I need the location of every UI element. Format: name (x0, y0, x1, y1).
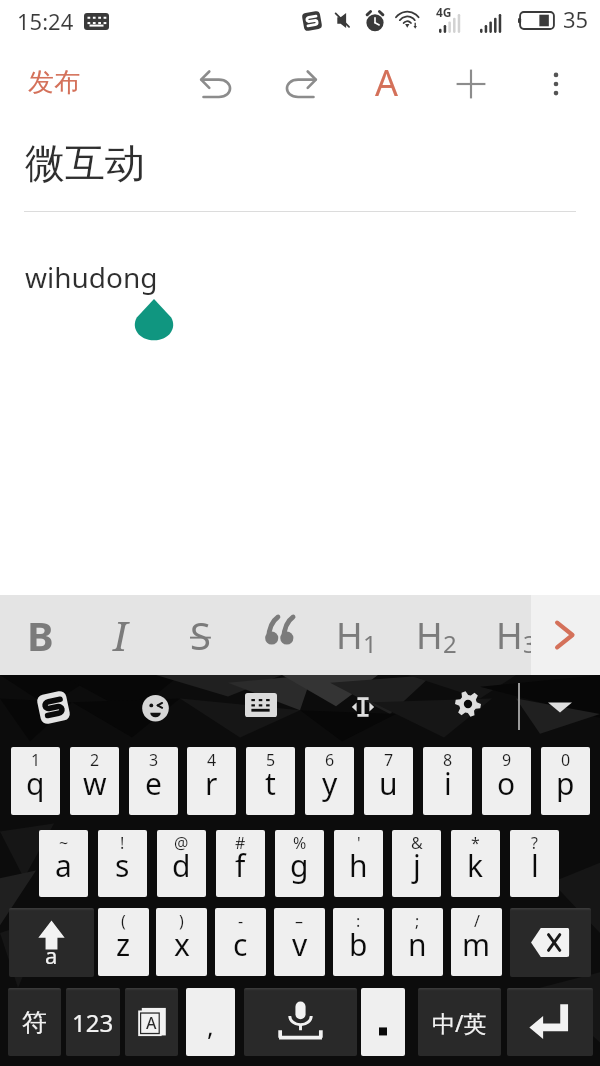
button[interactable]: 1 (11, 747, 60, 815)
button[interactable]: Hide keyboard (540, 697, 580, 717)
staticText: 发布 (28, 66, 80, 99)
button[interactable]: ' (334, 830, 383, 897)
button[interactable]: Move cursor (343, 693, 383, 721)
button[interactable]: ? (510, 830, 559, 897)
staticText: i (444, 763, 452, 804)
staticText: 符 (22, 1007, 47, 1038)
staticText: h (349, 845, 368, 886)
staticText: wihudong (25, 258, 158, 296)
button[interactable]: 符 (8, 988, 61, 1056)
button[interactable]: ; (392, 908, 443, 976)
staticText: b (349, 924, 368, 965)
staticText: p (556, 763, 575, 804)
button[interactable]: H (404, 595, 468, 675)
staticText: j (413, 845, 421, 886)
staticText: 35 (563, 4, 589, 34)
staticText: / (474, 910, 480, 932)
staticText: ' (357, 832, 361, 854)
staticText: y (322, 763, 338, 804)
staticText: 3 (523, 627, 537, 660)
button[interactable]: 6 (305, 747, 354, 815)
button[interactable]: Redo (277, 60, 325, 108)
staticText: ? (531, 832, 538, 854)
button[interactable]: Space and voice input (244, 988, 357, 1056)
staticText: d (172, 845, 191, 886)
staticText: o (497, 763, 516, 804)
button[interactable]: H (324, 595, 388, 675)
button[interactable]: 中/英 (418, 988, 501, 1056)
button[interactable]: * (451, 830, 500, 897)
button[interactable]: 8 (423, 747, 472, 815)
button[interactable]: More formatting (531, 595, 600, 675)
button[interactable]: , (186, 988, 235, 1056)
staticText: u (379, 763, 398, 804)
staticText: t (265, 763, 276, 804)
staticText: a (55, 845, 72, 886)
staticText: B (27, 608, 54, 662)
button[interactable]: 2 (70, 747, 119, 815)
button[interactable]: I (88, 595, 152, 675)
button[interactable]: : (333, 908, 384, 976)
staticText: 5 (266, 749, 276, 771)
staticText: m (462, 924, 491, 965)
staticText: H (416, 611, 443, 660)
staticText: q (26, 763, 45, 804)
staticText: k (467, 845, 484, 886)
button[interactable]: More options (532, 60, 580, 108)
staticText: 4G (436, 4, 452, 20)
button[interactable]: % (275, 830, 324, 897)
button[interactable]: ~ (39, 830, 88, 897)
staticText: 1 (363, 627, 377, 660)
button[interactable]: Dictionary (125, 988, 178, 1056)
button[interactable]: Emoji (138, 690, 173, 725)
button[interactable]: Period (361, 988, 405, 1056)
button[interactable]: Shift (9, 908, 94, 977)
button[interactable]: Sogou (35, 689, 72, 726)
button[interactable]: - (215, 908, 266, 976)
button[interactable]: Backspace (510, 908, 591, 977)
button[interactable]: Undo (192, 60, 240, 108)
button[interactable]: 5 (246, 747, 295, 815)
button[interactable]: H (484, 595, 548, 675)
staticText: ! (120, 832, 125, 854)
button[interactable]: B (8, 595, 72, 675)
button[interactable]: 发布 (15, 55, 93, 110)
staticText: 7 (384, 749, 394, 771)
staticText: n (408, 924, 427, 965)
staticText: g (290, 845, 309, 886)
staticText: c (233, 924, 248, 965)
staticText: 2 (443, 627, 457, 660)
button[interactable]: ( (98, 908, 149, 976)
staticText: 微互动 (25, 138, 145, 188)
staticText: l (531, 845, 539, 886)
staticText: – (295, 910, 304, 932)
button[interactable]: / (451, 908, 502, 976)
staticText: s (115, 845, 130, 886)
button[interactable]: 4 (187, 747, 236, 815)
button[interactable]: Keyboard layout (245, 693, 277, 717)
button[interactable]: 3 (129, 747, 178, 815)
button[interactable]: ! (98, 830, 147, 897)
button[interactable]: 7 (364, 747, 413, 815)
button[interactable]: S (168, 595, 232, 675)
button[interactable]: @ (157, 830, 206, 897)
staticText: H (336, 611, 363, 660)
staticText: 2 (90, 749, 100, 771)
button[interactable]: Add (447, 60, 495, 108)
button[interactable]: & (392, 830, 441, 897)
button[interactable]: 9 (482, 747, 531, 815)
button[interactable]: 123 (66, 988, 120, 1056)
staticText: 6 (325, 749, 335, 771)
staticText: S (190, 609, 211, 661)
button[interactable]: Settings (455, 691, 481, 717)
button[interactable]: Enter (507, 988, 593, 1056)
button[interactable]: # (216, 830, 265, 897)
button[interactable]: ) (156, 908, 207, 976)
button[interactable] (248, 595, 312, 675)
staticText: z (116, 924, 131, 965)
button[interactable]: – (274, 908, 325, 976)
button[interactable]: 0 (541, 747, 590, 815)
staticText: 9 (502, 749, 512, 771)
button[interactable]: Text style (363, 58, 411, 106)
staticText: 3 (149, 749, 159, 771)
